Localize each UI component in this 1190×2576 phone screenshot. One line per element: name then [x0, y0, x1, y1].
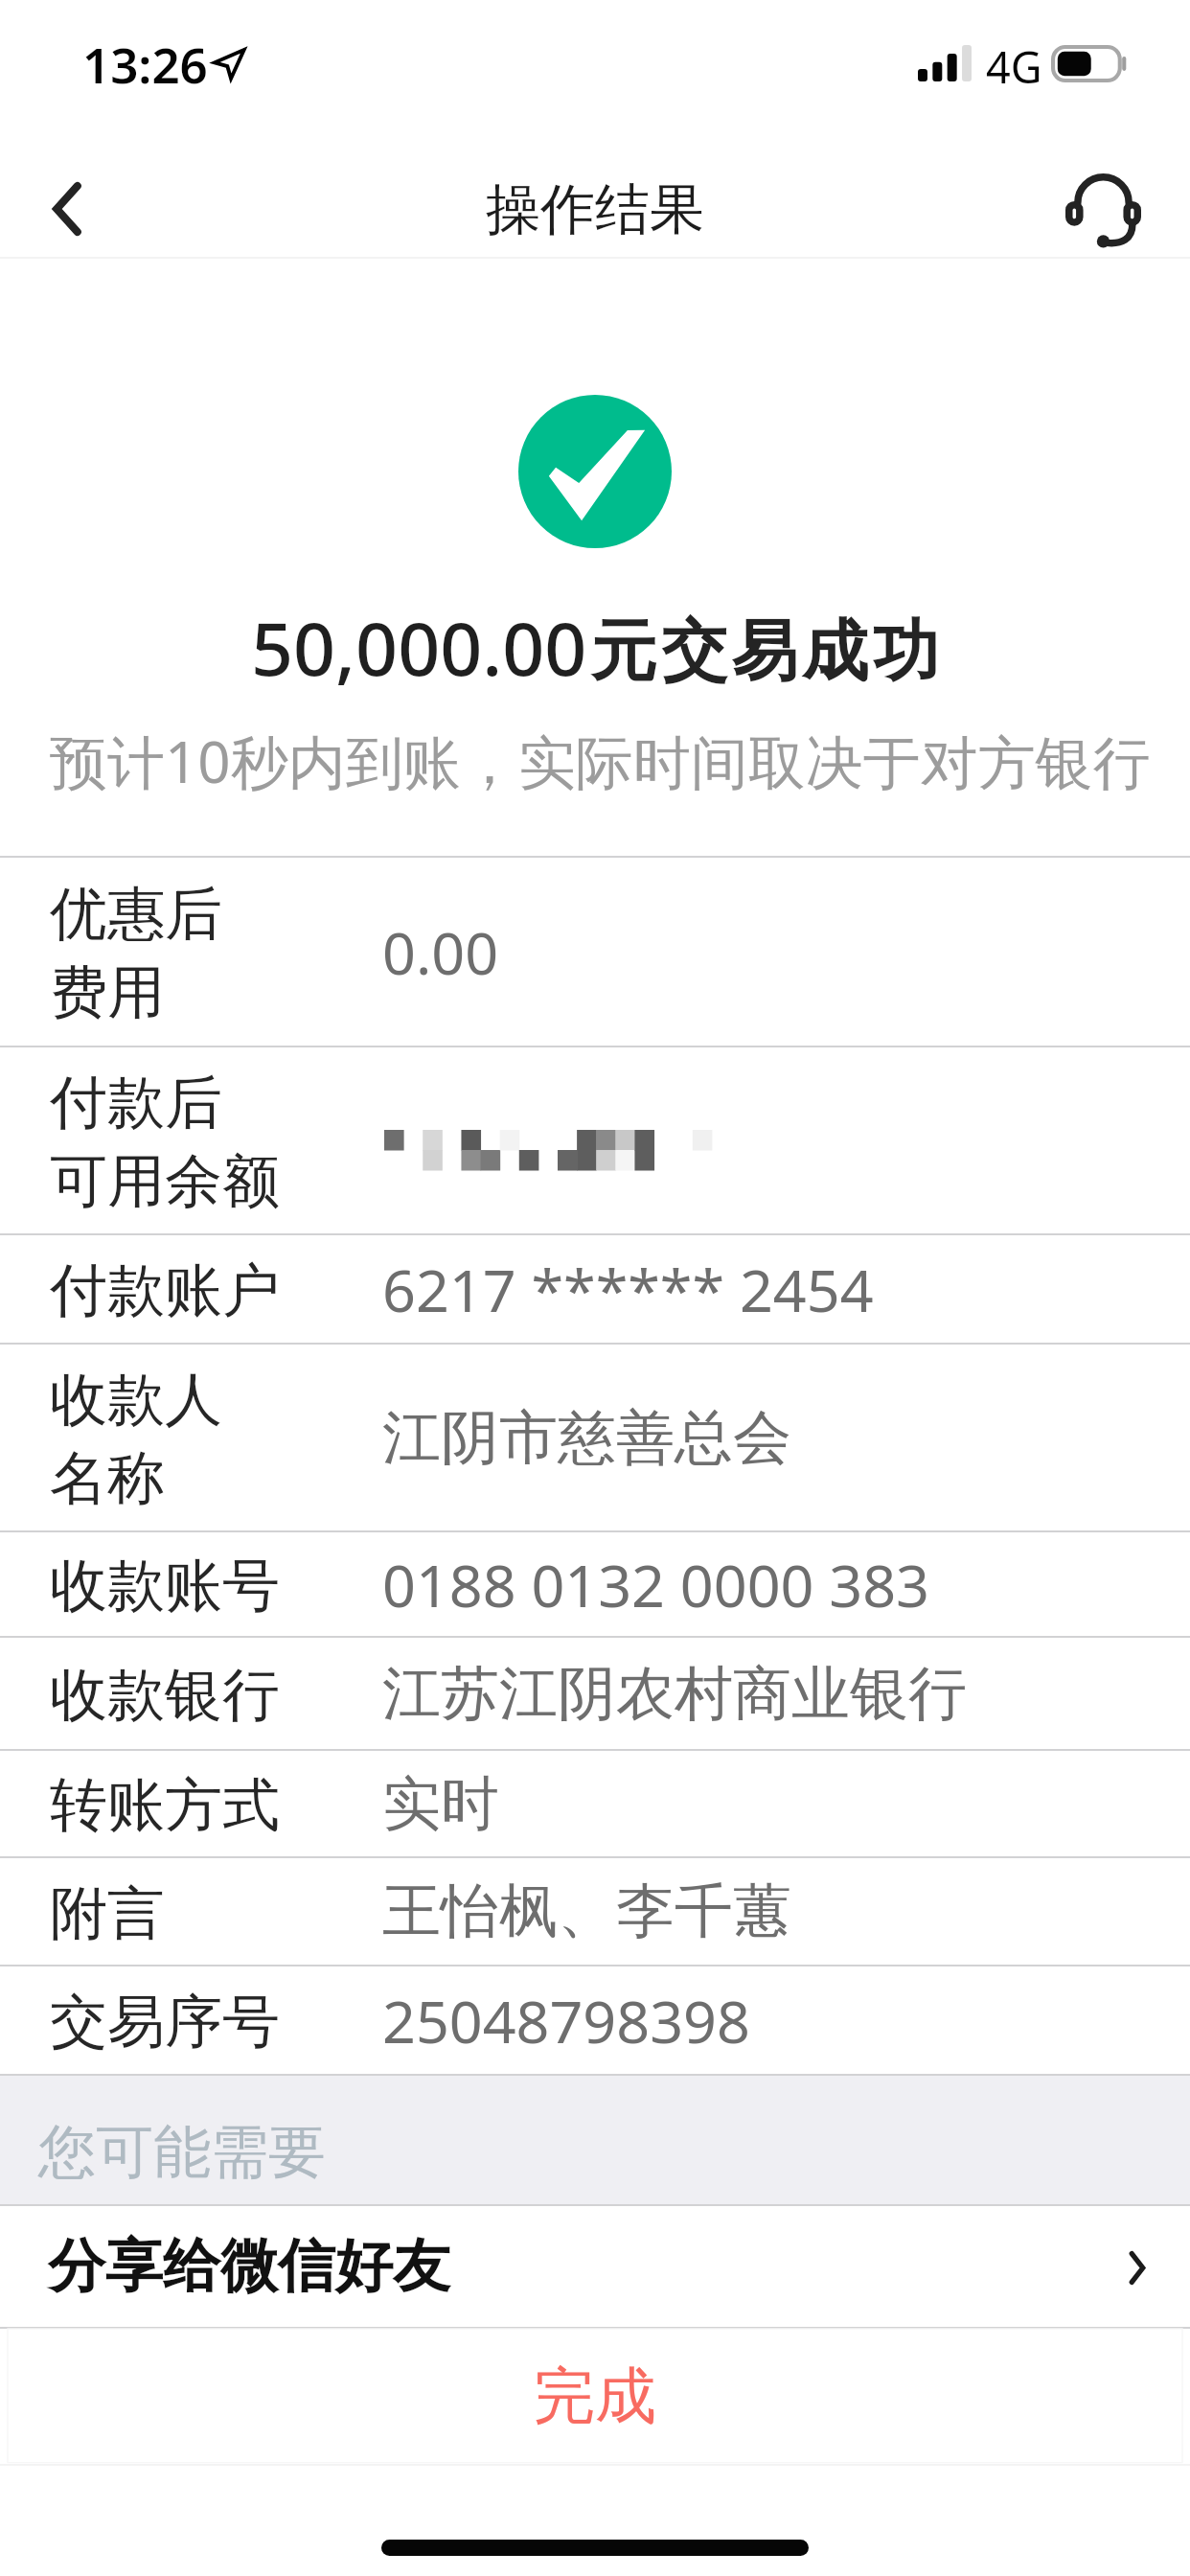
staticText: 优惠后 费用: [50, 878, 222, 1029]
staticText: 付款后 可用余额: [50, 1067, 280, 1218]
staticText: 附言: [50, 1877, 165, 1950]
button[interactable]: 收款人 名称: [0, 1345, 1190, 1530]
button[interactable]: 完成: [0, 2329, 1190, 2464]
staticText: 收款人 名称: [50, 1364, 222, 1515]
button[interactable]: Back: [0, 134, 128, 257]
staticText: 收款账号: [50, 1550, 280, 1622]
staticText: 6217 ****** 2454: [382, 1250, 874, 1329]
staticText: 预计10秒内到账，实际时间取决于对方银行: [50, 722, 1151, 800]
staticText: 江苏江阴农村商业银行: [382, 1657, 967, 1731]
staticText: 转账方式: [50, 1769, 280, 1842]
button[interactable]: 附言: [0, 1858, 1190, 1965]
button[interactable]: 收款账号: [0, 1532, 1190, 1636]
staticText: 25048798398: [382, 1981, 750, 2060]
staticText: 交易序号: [50, 1986, 280, 2058]
staticText: 0.00: [382, 912, 499, 992]
button[interactable]: 转账方式: [0, 1751, 1190, 1856]
staticText: 收款银行: [50, 1659, 280, 1732]
staticText: 江阴市慈善总会: [382, 1401, 791, 1475]
staticText: 13:26: [82, 31, 208, 97]
staticText: 0188 0132 0000 383: [382, 1545, 929, 1624]
staticText: 4G: [986, 37, 1042, 96]
button[interactable]: 付款后 可用余额: [0, 1047, 1190, 1233]
staticText: 您可能需要: [38, 2116, 326, 2189]
button[interactable]: Customer service: [1062, 134, 1190, 257]
staticText: 分享给微信好友: [48, 2230, 450, 2303]
button[interactable]: 收款银行: [0, 1638, 1190, 1749]
staticText: 王怡枫、李千蕙: [382, 1874, 791, 1948]
button[interactable]: 付款账户: [0, 1235, 1190, 1343]
button[interactable]: 交易序号: [0, 1966, 1190, 2074]
staticText: 付款账户: [50, 1254, 280, 1327]
button[interactable]: 优惠后 费用: [0, 858, 1190, 1046]
staticText: 元交易成功: [588, 610, 941, 694]
staticText: 完成: [534, 2357, 656, 2435]
button[interactable]: 分享给微信好友: [0, 2206, 1190, 2327]
staticText: 实时: [382, 1767, 499, 1841]
staticText: 操作结果: [486, 175, 704, 244]
staticText: 50,000.00: [251, 597, 587, 698]
